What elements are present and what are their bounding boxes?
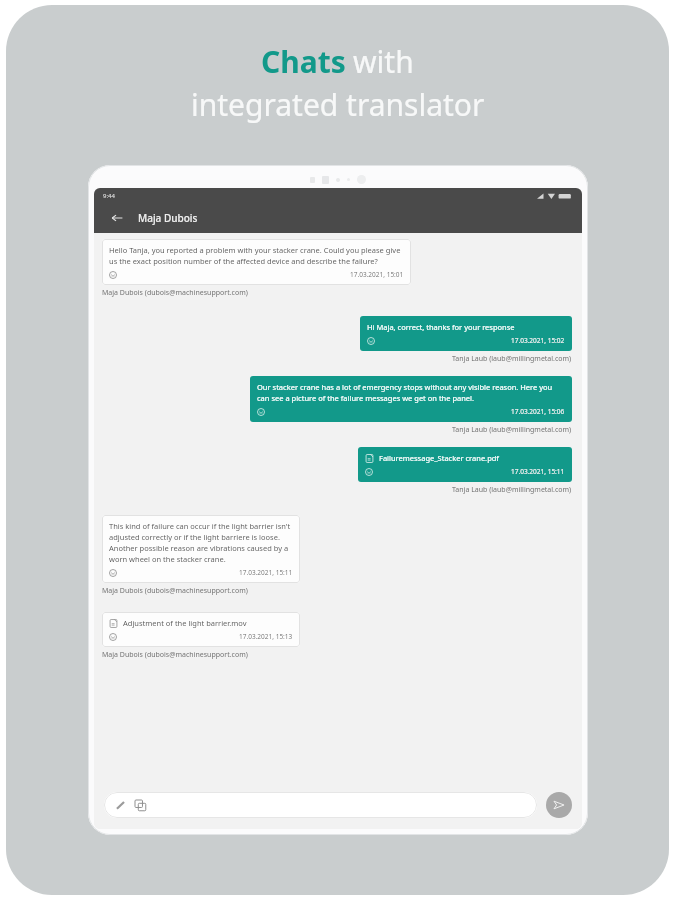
staticText: integrated translator: [191, 84, 485, 125]
button[interactable]: Attach file: [113, 798, 127, 812]
staticText: Maja Dubois: [138, 211, 198, 225]
button[interactable]: Send: [546, 792, 572, 818]
button[interactable]: Back: [106, 207, 128, 229]
staticText: Maja Dubois (dubois@machinesupport.com): [102, 650, 248, 660]
staticText: 17.03.2021, 15:13: [239, 632, 293, 641]
staticText: Hi Maja, correct, thanks for your respon…: [367, 322, 515, 332]
staticText: 17.03.2021, 15:01: [350, 270, 404, 279]
staticText: Failuremessage_Stacker crane.pdf: [379, 453, 499, 463]
staticText: 17.03.2021, 15:11: [239, 568, 293, 577]
staticText: with: [353, 41, 414, 82]
button[interactable]: This kind of failure can occur if the li…: [102, 515, 300, 583]
staticText: Maja Dubois (dubois@machinesupport.com): [102, 288, 248, 298]
button[interactable]: Failuremessage_Stacker crane.pdf: [358, 447, 572, 482]
staticText: 17.03.2021, 15:02: [511, 336, 565, 345]
staticText: Tanja Laub (laub@millingmetal.com): [452, 485, 572, 495]
staticText: 17.03.2021, 15:11: [511, 467, 565, 476]
staticText: 9:44: [103, 192, 115, 200]
staticText: Hello Tanja, you reported a problem with…: [109, 245, 404, 266]
staticText: Tanja Laub (laub@millingmetal.com): [452, 354, 572, 364]
button[interactable]: Adjustment of the light barrier.mov: [102, 612, 300, 647]
staticText: Adjustment of the light barrier.mov: [123, 618, 247, 628]
button[interactable]: Our stacker crane has a lot of emergency…: [250, 376, 572, 422]
staticText: Chats: [261, 41, 346, 82]
button[interactable]: Translate: [133, 798, 147, 812]
button[interactable]: Attach file: [104, 792, 537, 818]
staticText: Maja Dubois (dubois@machinesupport.com): [102, 586, 248, 596]
button[interactable]: Hello Tanja, you reported a problem with…: [102, 239, 411, 285]
staticText: This kind of failure can occur if the li…: [109, 521, 293, 564]
button[interactable]: Hi Maja, correct, thanks for your respon…: [360, 316, 572, 351]
staticText: Our stacker crane has a lot of emergency…: [257, 382, 565, 403]
staticText: Tanja Laub (laub@millingmetal.com): [452, 425, 572, 435]
staticText: 17.03.2021, 15:06: [511, 407, 565, 416]
